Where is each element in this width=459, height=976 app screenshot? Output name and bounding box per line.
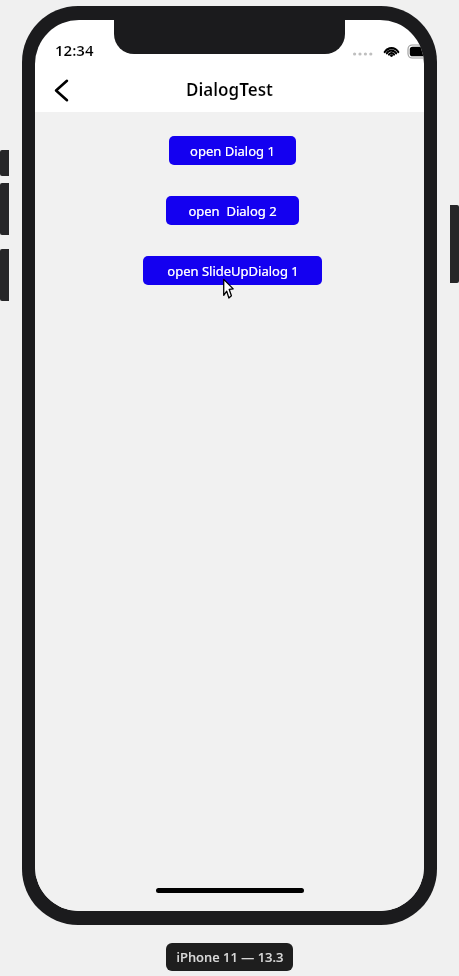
button[interactable]: Back: [37, 68, 85, 112]
staticText: DialogTest: [186, 78, 273, 101]
button[interactable]: open SlideUpDialog 1: [143, 256, 322, 285]
staticText: iPhone 11 — 13.3: [176, 948, 284, 966]
button[interactable]: iPhone 11 — 13.3: [166, 943, 293, 971]
staticText: open Dialog 1: [190, 142, 275, 160]
button[interactable]: open Dialog 2: [166, 196, 299, 225]
staticText: open SlideUpDialog 1: [167, 262, 299, 280]
staticText: open Dialog 2: [188, 202, 277, 220]
staticText: 12:34: [55, 40, 94, 60]
button[interactable]: open Dialog 1: [169, 136, 296, 165]
